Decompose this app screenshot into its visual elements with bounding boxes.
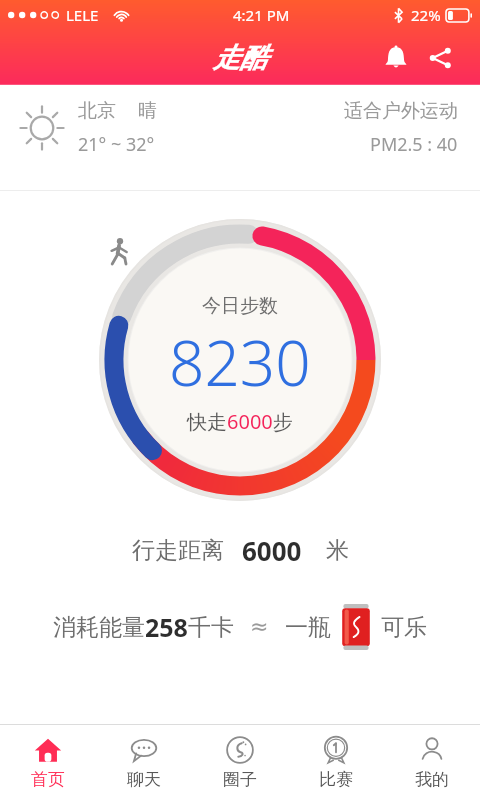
button[interactable]: 首页 [0, 729, 96, 796]
staticText: PM2.5 : 40 [370, 132, 458, 157]
staticText: 21° ~ 32° [78, 132, 155, 157]
staticText: 今日步数 [202, 294, 278, 318]
button[interactable]: Notifications [374, 36, 418, 80]
staticText: 快走6000步 [187, 408, 293, 435]
staticText: 比赛 [319, 769, 353, 790]
staticText: 消耗能量 [53, 613, 145, 642]
staticText: 258 [145, 610, 188, 644]
staticText: 圈子 [223, 769, 257, 790]
staticText: 一瓶 [285, 613, 331, 642]
button[interactable]: 圈子 [192, 729, 288, 796]
staticText: ≈ [250, 614, 269, 640]
staticText: 4:21 PM [233, 5, 290, 25]
staticText: 8230 [169, 320, 311, 404]
staticText: 北京 [78, 99, 116, 123]
button[interactable]: Share [418, 36, 462, 80]
staticText: 我的 [415, 769, 449, 790]
staticText: 米 [326, 536, 349, 565]
staticText: 6000 [242, 533, 302, 568]
staticText: 晴 [138, 99, 157, 123]
staticText: LELE [66, 5, 99, 25]
staticText: 首页 [31, 769, 65, 790]
staticText: 可乐 [381, 613, 427, 642]
staticText: 适合户外运动 [344, 99, 458, 123]
staticText: 聊天 [127, 769, 161, 790]
staticText: 走酷 [213, 41, 267, 75]
staticText: 行走距离 [132, 536, 224, 565]
button[interactable]: 我的 [384, 729, 480, 796]
staticText: 千卡 [188, 613, 234, 642]
button[interactable]: 聊天 [96, 729, 192, 796]
button[interactable]: 比赛 [288, 729, 384, 796]
staticText: 22% [411, 5, 441, 25]
